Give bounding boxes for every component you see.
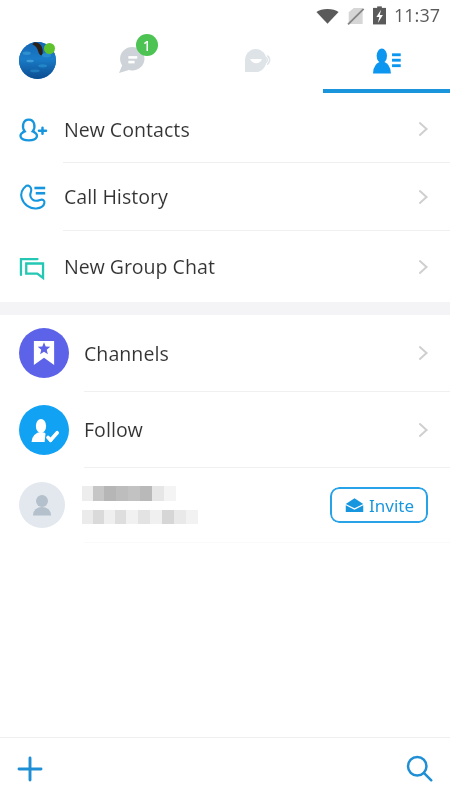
button[interactable]: New Group Chat [0, 231, 450, 302]
staticText: New Group Chat [64, 253, 215, 280]
staticText: Follow [84, 416, 143, 443]
staticText: New Contacts [64, 116, 190, 143]
button[interactable]: Add [8, 747, 52, 791]
staticText: 11:37 [394, 3, 441, 28]
button[interactable]: Follow [0, 392, 450, 468]
staticText: Invite [369, 494, 415, 517]
staticText: Call History [64, 183, 169, 210]
button[interactable]: Chats [118, 34, 162, 84]
staticText: Channels [84, 340, 169, 367]
button[interactable]: Call History [0, 163, 450, 231]
button[interactable]: Contacts [373, 48, 401, 74]
button[interactable]: Channels [0, 315, 450, 392]
button[interactable]: Broadcast [245, 49, 274, 72]
button[interactable]: Profile [19, 42, 57, 80]
staticText: 1 [143, 36, 152, 55]
button[interactable]: Invite [0, 468, 450, 543]
button[interactable]: Search [398, 747, 442, 791]
button[interactable]: New Contacts [0, 96, 450, 163]
button[interactable]: Invite [330, 487, 428, 523]
